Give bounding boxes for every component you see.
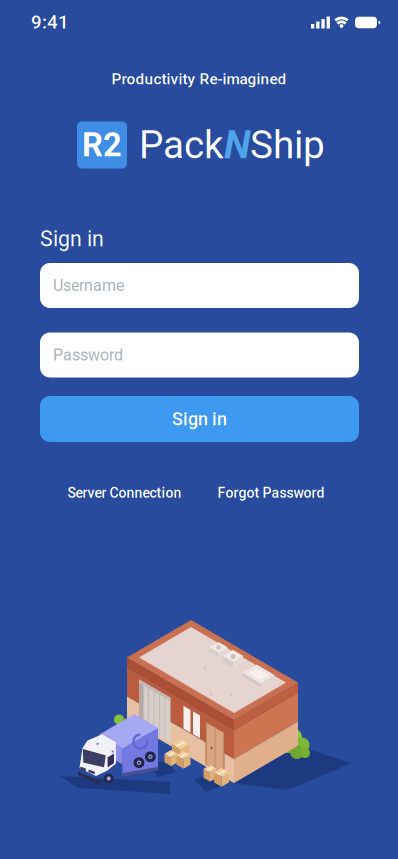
staticText: Forgot Password bbox=[217, 485, 324, 501]
staticText: 9:41 bbox=[31, 11, 69, 33]
staticText: Pack bbox=[139, 122, 224, 168]
staticText: Username bbox=[53, 276, 124, 295]
staticText: Productivity Re-imagined bbox=[111, 70, 286, 88]
button[interactable]: Sign in bbox=[40, 396, 359, 442]
button[interactable]: Password bbox=[40, 332, 359, 377]
staticText: R2 bbox=[82, 126, 122, 164]
staticText: Server Connection bbox=[67, 485, 181, 501]
button[interactable]: Server Connection bbox=[67, 485, 181, 501]
staticText: N bbox=[224, 122, 250, 168]
staticText: Ship bbox=[250, 122, 325, 168]
staticText: Password bbox=[53, 346, 123, 364]
staticText: Sign in bbox=[172, 408, 227, 430]
button[interactable]: Username bbox=[40, 263, 359, 308]
staticText: Sign in bbox=[40, 226, 104, 251]
button[interactable]: Forgot Password bbox=[217, 485, 324, 501]
